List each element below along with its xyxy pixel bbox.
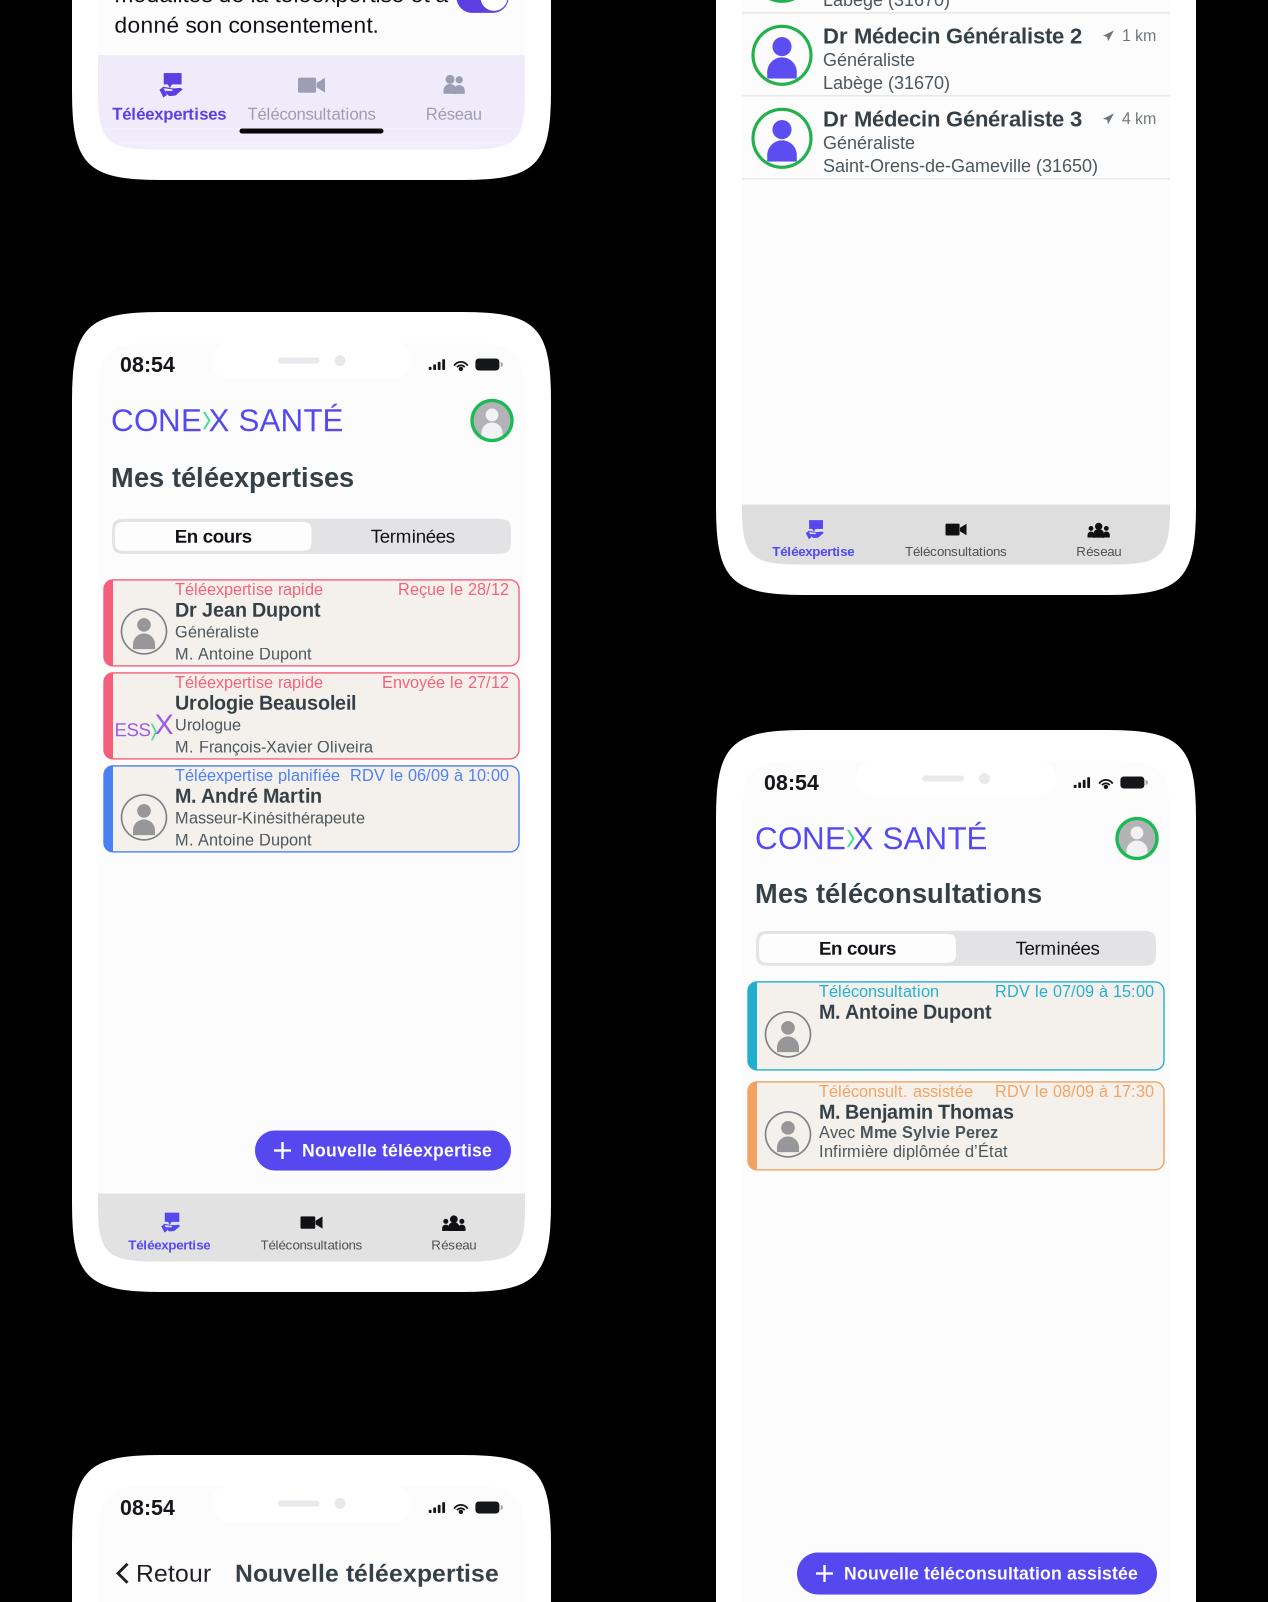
staticText: Généraliste bbox=[175, 623, 259, 641]
staticText: M. Antoine Dupont bbox=[819, 1001, 992, 1023]
staticText: Mme Sylvie Perez bbox=[860, 1123, 998, 1141]
staticText: Téléexpertises bbox=[112, 105, 226, 123]
button[interactable]: Téléconsult. assistée bbox=[748, 1082, 1164, 1170]
staticText: Réseau bbox=[1076, 544, 1121, 559]
staticText: Urologue bbox=[175, 716, 241, 734]
staticText: Téléconsultations bbox=[247, 105, 375, 123]
staticText: Masseur-Kinésithérapeute bbox=[175, 809, 365, 827]
button[interactable]: En cours bbox=[112, 519, 314, 554]
button[interactable]: Nouvelle téléexpertise bbox=[255, 1130, 511, 1170]
staticText: M. Benjamin Thomas bbox=[819, 1101, 1014, 1123]
staticText: M. François-Xavier Oliveira bbox=[175, 738, 373, 756]
button[interactable]: Téléexpertise rapide bbox=[104, 580, 519, 666]
button[interactable]: Téléexpertise rapide bbox=[104, 673, 519, 759]
button[interactable]: Terminées bbox=[959, 931, 1156, 966]
staticText: Labège (31670) bbox=[823, 73, 950, 93]
button[interactable]: Téléconsultation bbox=[748, 982, 1164, 1070]
staticText: Saint-Orens-de-Gameville (31650) bbox=[823, 156, 1098, 176]
button[interactable]: Dr Médecin Généraliste 1 bbox=[742, 0, 1170, 13]
staticText: M. André Martin bbox=[175, 785, 322, 807]
button[interactable]: Téléconsultations bbox=[885, 513, 1027, 564]
staticText: Mes téléexpertises bbox=[111, 462, 354, 493]
staticText: En cours bbox=[819, 938, 896, 959]
button[interactable]: Terminées bbox=[314, 519, 511, 554]
staticText: En cours bbox=[175, 526, 252, 547]
button[interactable]: Profil bbox=[1117, 818, 1157, 858]
staticText: Dr Médecin Généraliste 2 bbox=[823, 23, 1082, 48]
button[interactable]: Nouvelle téléconsultation assistée bbox=[797, 1552, 1157, 1594]
staticText: Téléexpertise bbox=[128, 1238, 210, 1252]
button[interactable]: Dr Médecin Généraliste 2 bbox=[742, 13, 1170, 96]
staticText: X SANTÉ bbox=[852, 821, 987, 856]
staticText: 4 km bbox=[1122, 110, 1156, 128]
button[interactable]: Téléexpertises bbox=[98, 64, 240, 130]
staticText: X SANTÉ bbox=[208, 403, 343, 438]
button[interactable]: Téléexpertise bbox=[98, 1202, 240, 1261]
staticText: Dr Médecin Généraliste 3 bbox=[823, 106, 1082, 131]
button[interactable]: Téléconsultations bbox=[240, 64, 383, 130]
staticText: Nouvelle téléconsultation assistée bbox=[844, 1564, 1138, 1583]
staticText: Réseau bbox=[431, 1238, 476, 1252]
staticText: RDV le 07/09 à 15:00 bbox=[995, 982, 1154, 1000]
staticText: M. Antoine Dupont bbox=[175, 645, 312, 663]
staticText: modalités de la téléexpertise et a bbox=[114, 0, 448, 7]
staticText: Terminées bbox=[371, 526, 455, 547]
staticText: CONE bbox=[111, 403, 202, 438]
staticText: Avec bbox=[819, 1123, 860, 1141]
staticText: Retour bbox=[136, 1559, 211, 1587]
button[interactable]: Réseau bbox=[383, 64, 525, 130]
button[interactable]: Dr Médecin Généraliste 3 bbox=[742, 96, 1170, 179]
staticText: RDV le 06/09 à 10:00 bbox=[350, 766, 509, 784]
staticText: Téléexpertise planifiée bbox=[175, 766, 340, 784]
staticText: ESS bbox=[115, 719, 151, 740]
staticText: Nouvelle téléexpertise bbox=[302, 1141, 492, 1160]
staticText: Réseau bbox=[426, 105, 482, 123]
staticText: Généraliste bbox=[823, 133, 915, 153]
staticText: Généraliste bbox=[823, 50, 915, 70]
button[interactable]: En cours bbox=[756, 931, 959, 966]
staticText: 1 km bbox=[1122, 27, 1156, 45]
staticText: Mes téléconsultations bbox=[755, 878, 1042, 909]
staticText: 08:54 bbox=[120, 353, 175, 376]
button[interactable]: Réseau bbox=[1027, 513, 1170, 564]
staticText: Téléconsultation bbox=[819, 982, 939, 1000]
staticText: Nouvelle téléexpertise bbox=[235, 1559, 499, 1587]
staticText: Téléexpertise bbox=[772, 544, 854, 559]
staticText: Téléexpertise rapide bbox=[175, 673, 323, 691]
staticText: Infirmière diplômée d’État bbox=[819, 1142, 1008, 1160]
button[interactable]: Réseau bbox=[383, 1202, 525, 1261]
staticText: 08:54 bbox=[764, 771, 819, 794]
button[interactable]: Profil bbox=[472, 400, 512, 440]
staticText: Envoyée le 27/12 bbox=[382, 673, 509, 691]
staticText: X bbox=[154, 708, 173, 740]
staticText: donné son consentement. bbox=[114, 12, 378, 37]
staticText: Téléconsultations bbox=[260, 1238, 362, 1252]
button[interactable]: Téléexpertise planifiée bbox=[104, 766, 519, 852]
staticText: Dr Jean Dupont bbox=[175, 599, 321, 621]
staticText: Terminées bbox=[1015, 938, 1099, 959]
button[interactable]: Téléconsultations bbox=[240, 1202, 383, 1261]
staticText: 08:54 bbox=[120, 1496, 175, 1519]
staticText: Reçue le 28/12 bbox=[398, 580, 509, 598]
staticText: Labège (31670) bbox=[823, 0, 950, 10]
staticText: M. Antoine Dupont bbox=[175, 831, 312, 849]
staticText: Urologie Beausoleil bbox=[175, 692, 356, 714]
staticText: Téléconsultations bbox=[905, 544, 1007, 559]
button[interactable]: Téléexpertise bbox=[742, 513, 885, 564]
staticText: RDV le 08/09 à 17:30 bbox=[995, 1082, 1154, 1100]
staticText: Téléconsult. assistée bbox=[819, 1082, 973, 1100]
staticText: CONE bbox=[755, 821, 846, 856]
button[interactable]: Retour bbox=[116, 1559, 211, 1587]
staticText: Téléexpertise rapide bbox=[175, 580, 323, 598]
